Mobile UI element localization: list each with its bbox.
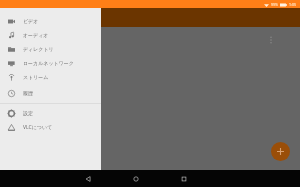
button[interactable]: ビデオ: [0, 14, 101, 28]
button[interactable]: ディレクトリ: [0, 42, 101, 56]
staticText: 99%: [271, 2, 278, 7]
staticText: ローカルネットワーク: [23, 60, 74, 66]
button[interactable]: Back: [78, 170, 98, 187]
staticText: ディレクトリ: [23, 46, 54, 52]
staticText: ストリーム: [23, 74, 49, 80]
button[interactable]: オーディオ: [0, 28, 101, 42]
button[interactable]: ストリーム: [0, 70, 101, 84]
button[interactable]: 履歴: [0, 86, 101, 100]
button[interactable]: Recent apps: [174, 170, 194, 187]
staticText: オーディオ: [23, 32, 49, 38]
button[interactable]: ローカルネットワーク: [0, 56, 101, 70]
staticText: 履歴: [23, 90, 33, 96]
staticText: 1:05: [289, 2, 296, 7]
button[interactable]: 設定: [0, 106, 101, 120]
staticText: VLCについて: [23, 124, 53, 131]
button[interactable]: Home: [126, 170, 146, 187]
staticText: ビデオ: [23, 18, 39, 24]
staticText: 設定: [23, 110, 33, 116]
button[interactable]: Add: [271, 142, 290, 161]
button[interactable]: VLCについて: [0, 120, 101, 134]
